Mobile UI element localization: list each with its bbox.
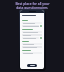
- button[interactable]: [22, 29, 42, 39]
- button[interactable]: [22, 41, 42, 48]
- button[interactable]: [22, 50, 42, 54]
- button[interactable]: [22, 20, 42, 27]
- staticText: data questionnaires: [16, 5, 48, 9]
- button[interactable]: Submit: [27, 64, 37, 67]
- staticText: Best place for all your: [15, 1, 50, 5]
